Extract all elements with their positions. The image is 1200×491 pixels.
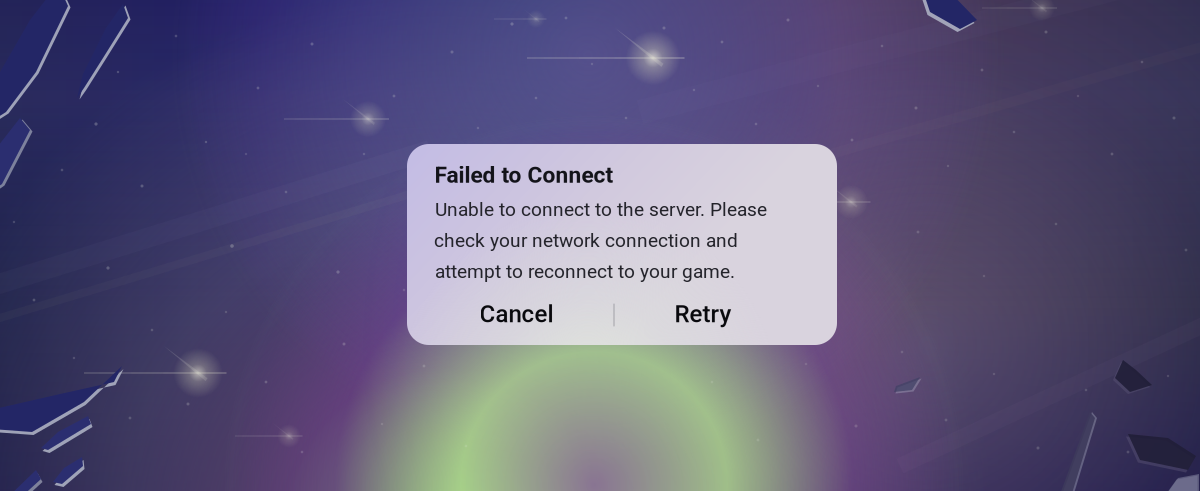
staticText: check your network connection and	[434, 229, 738, 252]
staticText: Retry	[674, 300, 731, 328]
button[interactable]: Cancel	[427, 288, 605, 340]
staticText: attempt to reconnect to your game.	[435, 260, 735, 283]
button[interactable]: Retry	[614, 288, 792, 340]
staticText: Failed to Connect	[434, 162, 613, 188]
staticText: Unable to connect to the server. Please	[435, 198, 767, 221]
staticText: Cancel	[479, 300, 553, 328]
